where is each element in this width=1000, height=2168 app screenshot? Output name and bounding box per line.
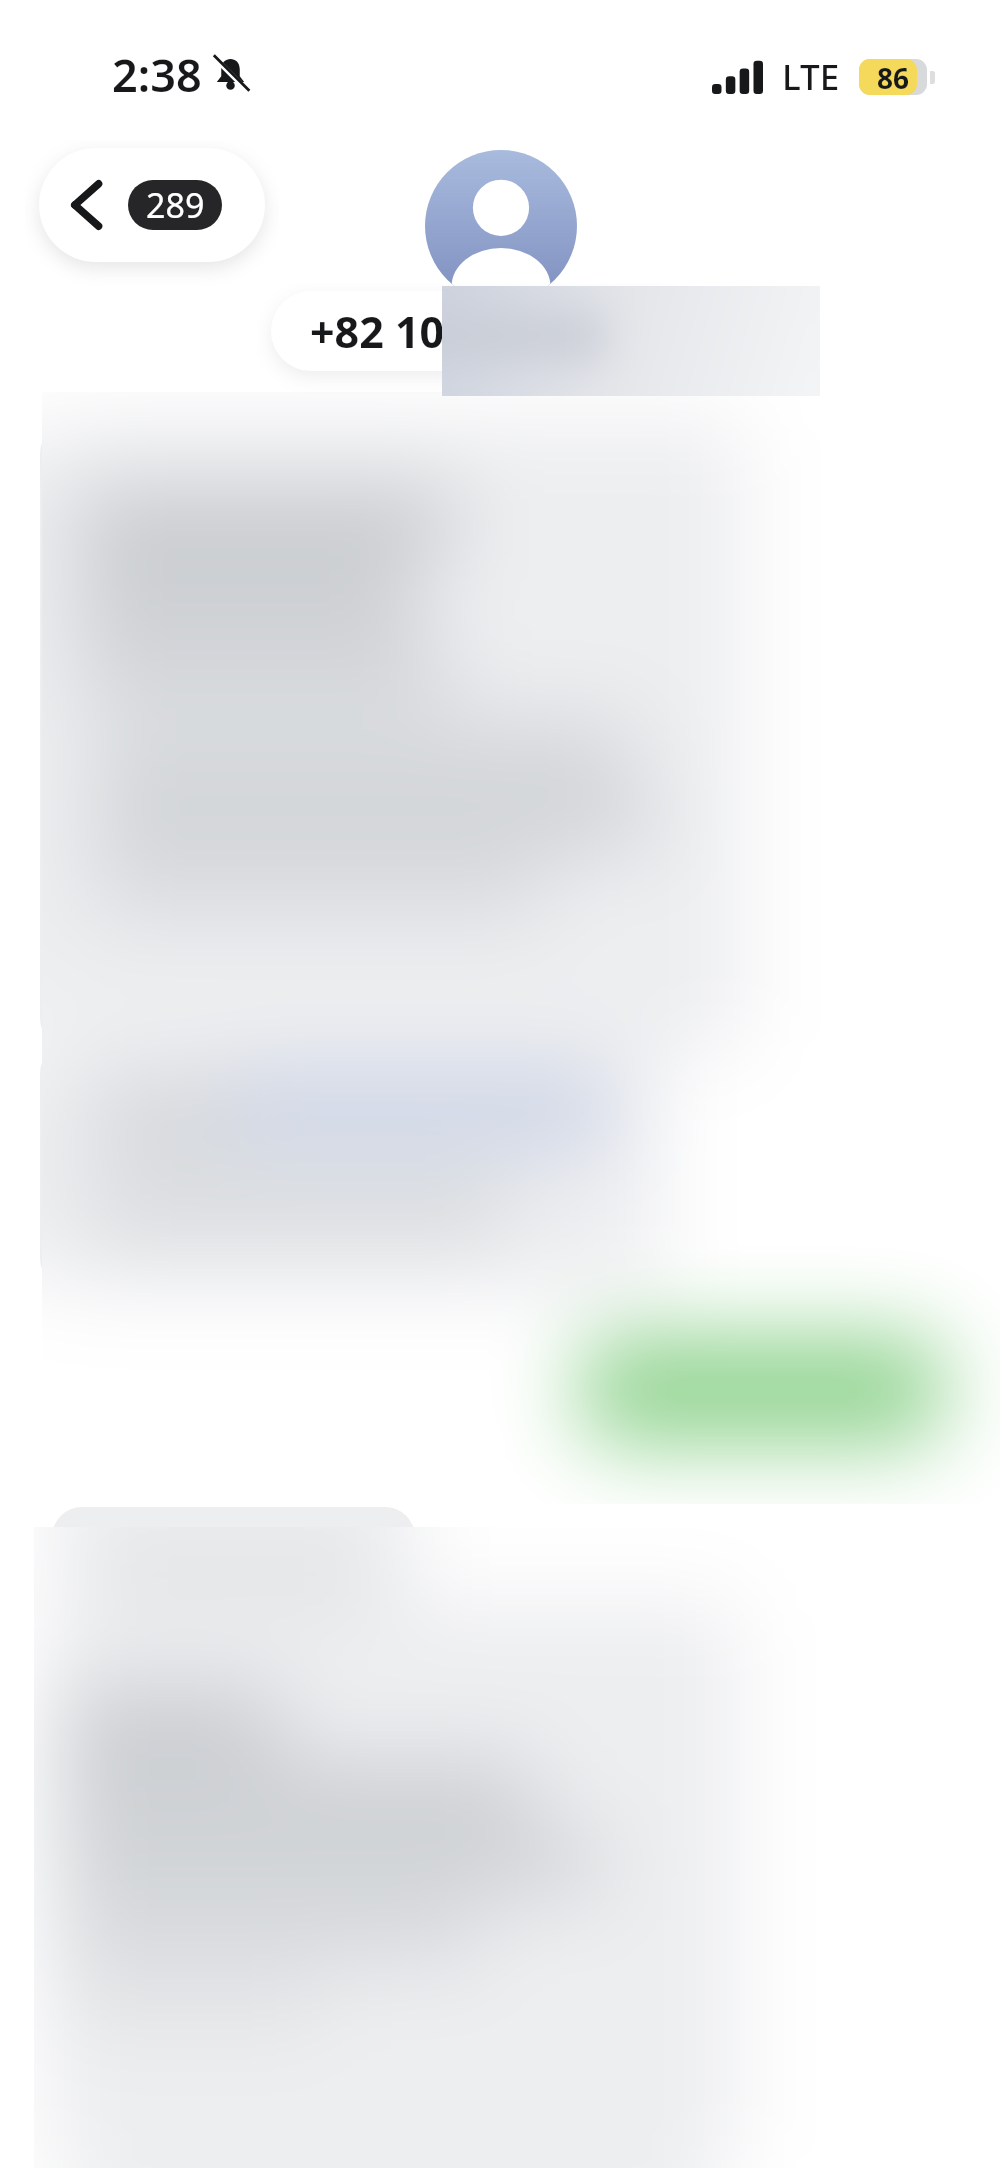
button[interactable]: Back, 289 unread bbox=[39, 148, 265, 262]
staticText: LTE bbox=[782, 53, 840, 101]
staticText: 86 bbox=[877, 59, 910, 95]
staticText: 2:38 bbox=[112, 44, 202, 105]
staticText: 289 bbox=[146, 182, 205, 228]
staticText: +82 10-1234-5678 bbox=[310, 302, 669, 361]
button[interactable]: +82 10-1234-5678 bbox=[271, 291, 701, 371]
